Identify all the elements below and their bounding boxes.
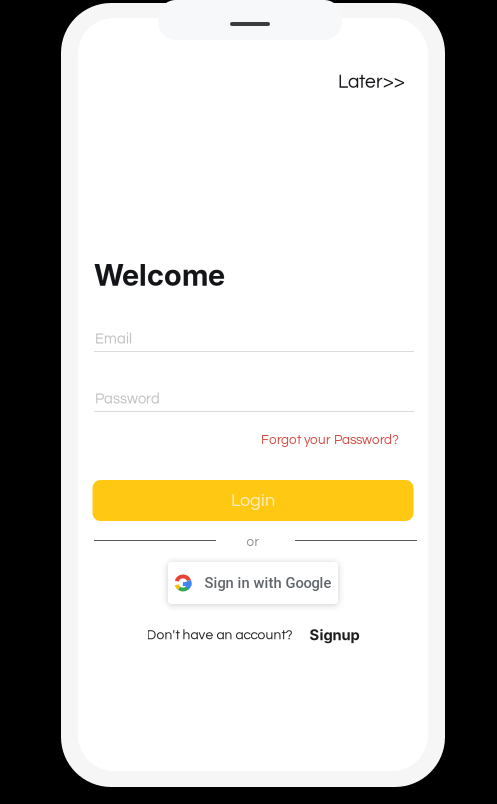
staticText: Login (231, 491, 275, 510)
staticText: Password (95, 391, 160, 406)
staticText: or (246, 535, 259, 549)
button[interactable]: Later>> (338, 72, 428, 92)
staticText: Don't have an account? (146, 628, 292, 642)
staticText: Welcome (94, 257, 225, 293)
button[interactable]: Login (92, 480, 413, 521)
button[interactable]: Forgot your Password? (261, 433, 428, 447)
staticText: Email (95, 331, 132, 346)
staticText: Sign in with Google (204, 574, 331, 592)
staticText: Later>> (338, 72, 405, 92)
button[interactable]: Sign in with Google (168, 562, 338, 604)
button[interactable]: Signup (309, 626, 359, 644)
staticText: Forgot your Password? (261, 433, 399, 447)
staticText: Signup (309, 626, 359, 644)
